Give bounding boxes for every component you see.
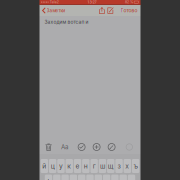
button[interactable]: Share bbox=[99, 7, 105, 14]
button[interactable]: ш bbox=[99, 159, 106, 173]
button[interactable]: н bbox=[82, 159, 89, 173]
button[interactable]: й bbox=[41, 159, 48, 173]
button[interactable]: д bbox=[111, 175, 119, 180]
button[interactable]: Markup bbox=[108, 143, 115, 150]
staticText: у bbox=[59, 162, 63, 170]
button[interactable]: к bbox=[65, 159, 73, 173]
button[interactable]: More bbox=[126, 144, 132, 150]
staticText: з bbox=[117, 162, 120, 170]
staticText: ъ bbox=[134, 162, 138, 170]
button[interactable]: New note bbox=[107, 7, 113, 14]
staticText: г bbox=[93, 162, 96, 170]
button[interactable]: Заметки bbox=[39, 7, 66, 14]
button[interactable]: г bbox=[90, 159, 98, 173]
staticText: Готово bbox=[120, 7, 137, 13]
staticText: 82 % bbox=[125, 0, 133, 4]
staticText: Tele2 bbox=[50, 0, 59, 4]
staticText: н bbox=[84, 162, 88, 170]
staticText: 13:27 bbox=[87, 0, 96, 4]
staticText: х bbox=[125, 162, 129, 170]
staticText: Aa bbox=[61, 143, 68, 151]
button[interactable]: щ bbox=[107, 159, 114, 173]
button[interactable]: Camera bbox=[93, 143, 100, 150]
button[interactable]: Delete bbox=[45, 143, 52, 151]
button[interactable]: ъ bbox=[132, 159, 139, 173]
staticText: ш bbox=[100, 162, 105, 170]
button[interactable]: ц bbox=[49, 159, 56, 173]
staticText: Заметки bbox=[47, 8, 66, 13]
staticText: к bbox=[67, 162, 71, 170]
staticText: ц bbox=[51, 162, 55, 170]
button[interactable]: в bbox=[61, 175, 69, 180]
button[interactable]: з bbox=[115, 159, 123, 173]
staticText: ф bbox=[46, 178, 51, 180]
button[interactable]: Готово bbox=[113, 7, 140, 13]
button[interactable]: Aa bbox=[61, 143, 68, 151]
button[interactable]: ф bbox=[45, 175, 52, 180]
button[interactable]: х bbox=[124, 159, 131, 173]
staticText: е bbox=[75, 162, 79, 170]
button[interactable]: Checklist bbox=[78, 143, 85, 150]
staticText: Заходим вотсап и bbox=[44, 19, 88, 25]
staticText: щ bbox=[108, 162, 114, 170]
staticText: й bbox=[42, 162, 46, 170]
button[interactable]: у bbox=[57, 159, 65, 173]
button[interactable]: е bbox=[74, 159, 81, 173]
